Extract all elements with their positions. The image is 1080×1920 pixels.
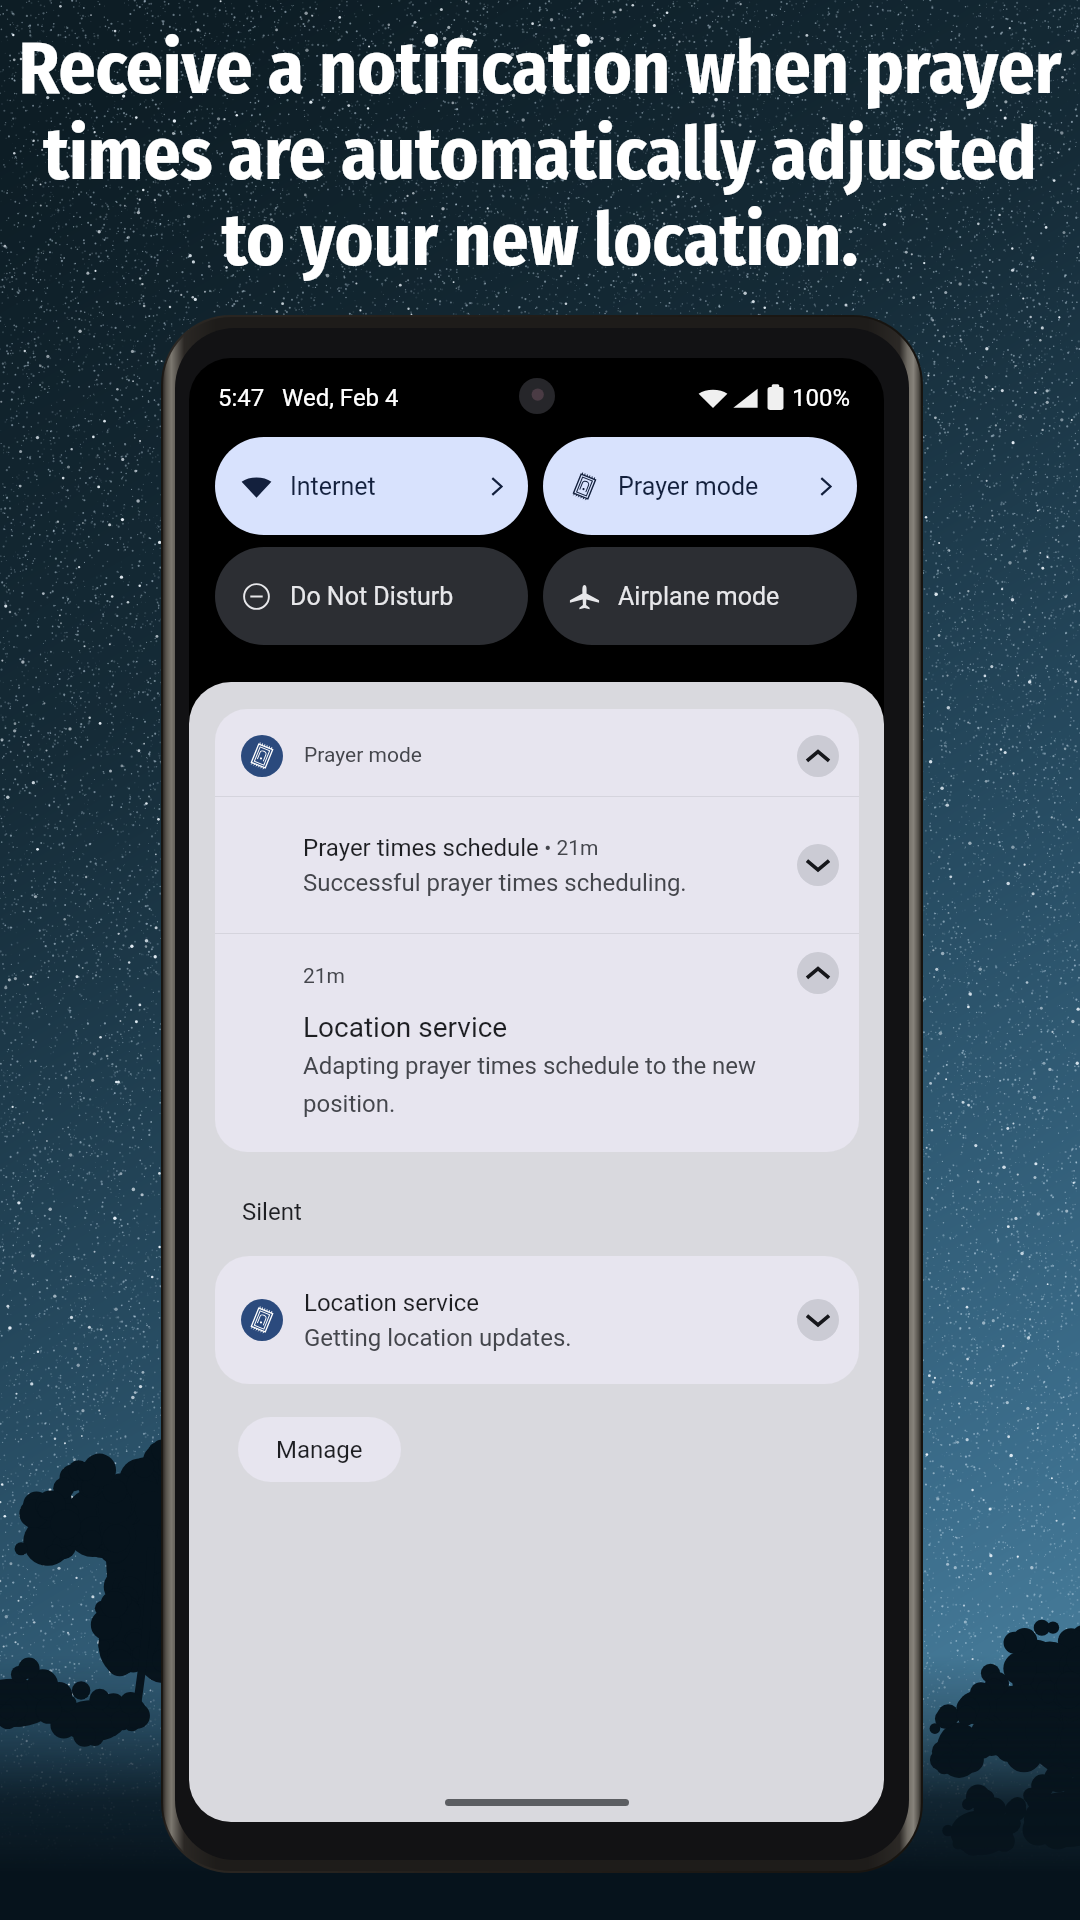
button[interactable]: Prayer mode xyxy=(543,437,857,535)
staticText: 5:47 xyxy=(218,384,265,412)
staticText: 21m xyxy=(303,964,346,989)
staticText: • 21m xyxy=(539,836,599,861)
staticText: Wed, Feb 4 xyxy=(282,384,399,412)
staticText: Internet xyxy=(290,472,376,501)
button[interactable]: Collapse notification xyxy=(797,735,839,777)
staticText: Silent xyxy=(242,1198,302,1226)
button[interactable]: Manage xyxy=(238,1417,401,1482)
button[interactable]: Expand notification xyxy=(797,1299,839,1341)
button[interactable]: Collapse notification xyxy=(797,952,839,994)
staticText: Manage xyxy=(276,1436,363,1464)
button[interactable]: Prayer times schedule xyxy=(215,797,859,933)
staticText: Do Not Disturb xyxy=(290,582,454,611)
staticText: Adapting prayer times schedule to the ne… xyxy=(303,1052,757,1118)
staticText: Airplane mode xyxy=(618,582,780,611)
staticText: Location service xyxy=(303,1011,508,1044)
staticText: Location service xyxy=(304,1289,480,1317)
staticText: Prayer mode xyxy=(304,743,422,768)
button[interactable]: Expand notification xyxy=(797,844,839,886)
staticText: Successful prayer times scheduling. xyxy=(303,869,687,897)
staticText: Prayer mode xyxy=(618,472,759,501)
staticText: 100% xyxy=(792,384,851,412)
staticText: Receive a notification when prayer times… xyxy=(0,25,1080,284)
button[interactable]: Do Not Disturb xyxy=(215,547,528,645)
button[interactable]: Prayer mode xyxy=(215,709,859,796)
button[interactable]: Airplane mode xyxy=(543,547,857,645)
button[interactable]: 21m xyxy=(215,934,859,1152)
staticText: Prayer times schedule xyxy=(303,834,539,862)
staticText: Getting location updates. xyxy=(304,1324,572,1352)
button[interactable]: Location service xyxy=(215,1256,859,1384)
button[interactable]: Internet xyxy=(215,437,528,535)
